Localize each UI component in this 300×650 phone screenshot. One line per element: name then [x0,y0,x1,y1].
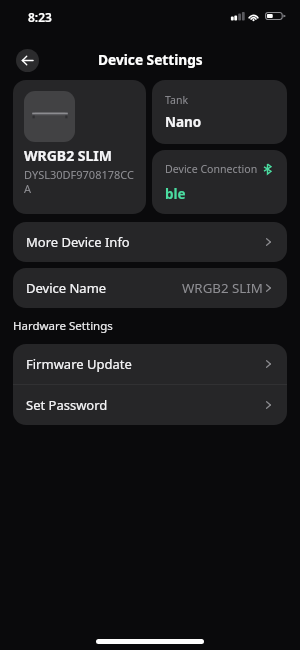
staticText: ble [165,185,186,203]
staticText: More Device Info [26,233,130,251]
staticText: Device Name [26,279,107,297]
staticText: Set Password [26,396,108,414]
staticText: 8:23 [28,9,52,25]
button[interactable]: Device Name [13,268,287,308]
staticText: DYSL30DF9708178CCA [24,167,138,196]
staticText: Nano [165,113,202,131]
button[interactable]: More Device Info [13,222,287,262]
staticText: Device Connection [165,162,258,176]
staticText: WRGB2 SLIM [182,279,263,297]
staticText: Firmware Update [26,355,132,373]
staticText: WRGB2 SLIM [24,146,113,165]
button[interactable]: Device Connection [152,150,287,214]
button[interactable]: WRGB2 SLIM [13,80,146,214]
staticText: Tank [165,93,188,107]
staticText: Device Settings [98,50,203,69]
button[interactable]: Tank [152,80,287,144]
button[interactable]: Set Password [13,385,287,425]
button[interactable]: Back [16,49,39,72]
staticText: Hardware Settings [13,318,113,334]
button[interactable]: Firmware Update [13,344,287,384]
